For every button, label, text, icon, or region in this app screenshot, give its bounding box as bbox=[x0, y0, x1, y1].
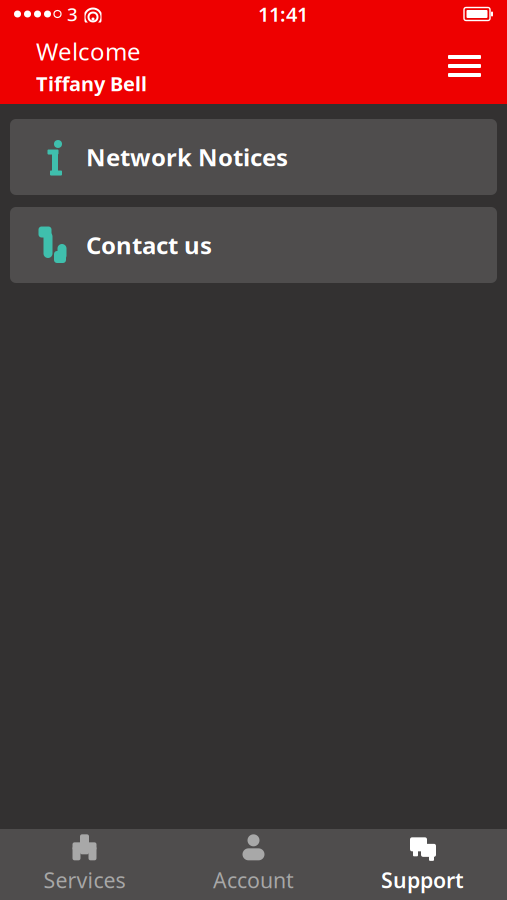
button[interactable]: Menu bbox=[436, 41, 493, 91]
staticText: 3 bbox=[67, 2, 78, 26]
button[interactable]: Support bbox=[338, 825, 507, 900]
button[interactable]: Network Notices bbox=[10, 119, 497, 195]
staticText: Network Notices bbox=[86, 141, 288, 173]
staticText: Account bbox=[213, 866, 294, 894]
staticText: Support bbox=[381, 866, 464, 894]
staticText: Contact us bbox=[86, 229, 212, 261]
button[interactable]: Account bbox=[169, 825, 338, 900]
button[interactable]: Contact us bbox=[10, 207, 497, 283]
staticText: Services bbox=[43, 866, 125, 894]
staticText: Welcome bbox=[36, 35, 141, 67]
staticText: 11:41 bbox=[258, 1, 308, 27]
staticText: Tiffany Bell bbox=[36, 70, 147, 97]
button[interactable]: Services bbox=[0, 825, 169, 900]
